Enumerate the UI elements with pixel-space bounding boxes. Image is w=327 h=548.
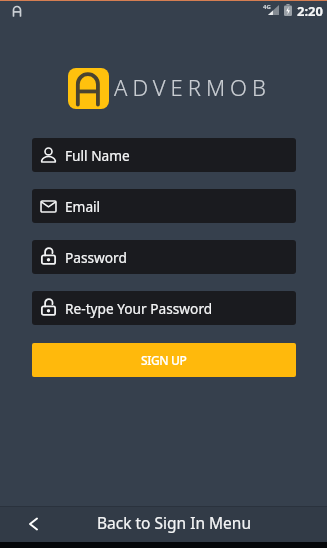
button[interactable]: Email [32, 189, 296, 223]
button[interactable]: Full Name [32, 138, 296, 172]
staticText: Full Name [65, 146, 130, 165]
staticText: SIGN UP [141, 352, 187, 368]
staticText: ADVERMOB [114, 72, 271, 102]
button[interactable]: SIGN UP [32, 343, 296, 377]
button[interactable]: Re-type Your Password [32, 291, 296, 325]
button[interactable]: Back to Sign In Menu [0, 506, 327, 542]
staticText: 2:20 [297, 2, 323, 20]
staticText: Back to Sign In Menu [97, 512, 251, 533]
staticText: Re-type Your Password [65, 299, 213, 318]
staticText: Email [65, 197, 101, 216]
staticText: 4G [263, 3, 271, 11]
staticText: Password [65, 248, 127, 267]
button[interactable]: Password [32, 240, 296, 274]
